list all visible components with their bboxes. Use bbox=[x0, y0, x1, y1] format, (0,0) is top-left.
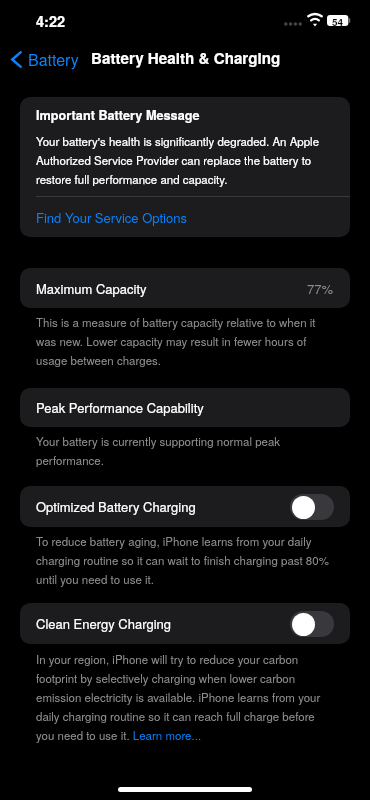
staticText: Find Your Service Options bbox=[36, 208, 187, 227]
staticText: 4:22 bbox=[36, 11, 66, 32]
staticText: This is a measure of battery capacity re… bbox=[36, 314, 332, 368]
staticText: Important Battery Message bbox=[36, 106, 200, 124]
staticText: Clean Energy Charging bbox=[36, 614, 171, 633]
button[interactable]: Optimized Battery Charging, off bbox=[290, 494, 334, 520]
staticText: Maximum Capacity bbox=[36, 279, 147, 298]
staticText: Peak Performance Capability bbox=[36, 398, 204, 417]
staticText: 54 bbox=[332, 15, 344, 26]
button[interactable]: Clean Energy Charging bbox=[20, 603, 350, 644]
staticText: In your region, iPhone will try to reduc… bbox=[36, 651, 332, 743]
staticText: Your battery is currently supporting nor… bbox=[36, 433, 332, 468]
button[interactable]: Optimized Battery Charging bbox=[20, 486, 350, 527]
staticText: Your battery's health is significantly d… bbox=[36, 133, 332, 187]
button[interactable]: Back to Battery bbox=[5, 45, 87, 74]
button[interactable]: Peak Performance Capability bbox=[20, 388, 350, 427]
button[interactable]: Maximum Capacity bbox=[20, 268, 350, 308]
staticText: To reduce battery aging, iPhone learns f… bbox=[36, 533, 332, 587]
staticText: Battery Health & Charging bbox=[91, 47, 281, 69]
staticText: Battery bbox=[28, 48, 79, 71]
staticText: 77% bbox=[307, 279, 334, 298]
button[interactable]: Clean Energy Charging, off bbox=[290, 611, 334, 637]
button[interactable]: Find Your Service Options bbox=[20, 197, 350, 237]
staticText: Optimized Battery Charging bbox=[36, 497, 196, 516]
